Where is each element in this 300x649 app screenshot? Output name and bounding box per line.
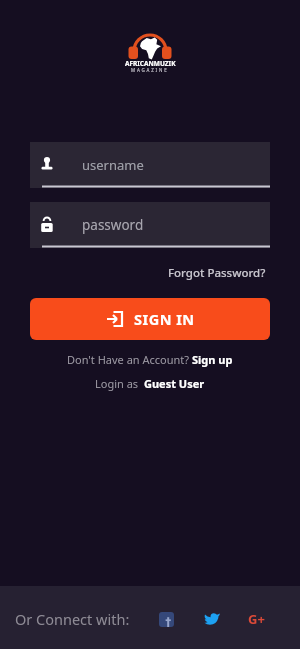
- button[interactable]: G+: [245, 609, 267, 629]
- staticText: MAGAZINE: [131, 67, 169, 73]
- staticText: Login as: [95, 376, 144, 391]
- staticText: Or Connect with:: [15, 609, 130, 629]
- button[interactable]: password: [30, 202, 270, 248]
- staticText: G+: [248, 610, 265, 628]
- staticText: AFRICANMUZIK: [125, 59, 176, 68]
- staticText: SIGN IN: [134, 309, 195, 329]
- button[interactable]: SIGN IN: [30, 298, 270, 340]
- button[interactable]: Forgot Password?: [168, 265, 266, 281]
- staticText: Don't Have an Account?: [67, 352, 192, 367]
- button[interactable]: Login as: [95, 376, 205, 391]
- button[interactable]: [204, 612, 220, 626]
- staticText: Sign up: [192, 352, 233, 367]
- staticText: Guest User: [144, 376, 205, 391]
- staticText: password: [82, 216, 144, 234]
- button[interactable]: username: [30, 142, 270, 188]
- button[interactable]: [159, 612, 174, 627]
- button[interactable]: Don't Have an Account?: [67, 352, 233, 367]
- staticText: username: [82, 156, 144, 174]
